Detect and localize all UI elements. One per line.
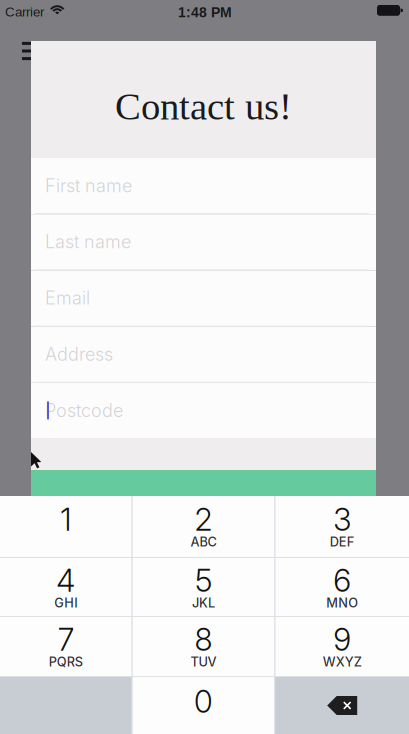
button[interactable]: 7 <box>0 617 132 676</box>
staticText: 2 <box>194 501 212 538</box>
button[interactable]: 9 <box>275 617 409 676</box>
staticText: 9 <box>333 621 351 658</box>
staticText: 1:48 PM <box>178 4 232 20</box>
staticText: 5 <box>195 562 212 599</box>
staticText: Postcode <box>45 399 123 421</box>
button[interactable] <box>31 470 376 514</box>
button[interactable]: 8 <box>133 617 274 676</box>
staticText: 1 <box>60 501 71 538</box>
staticText: Last name <box>45 231 131 253</box>
staticText: WXYZ <box>323 654 362 669</box>
staticText: Carrier <box>5 4 44 19</box>
staticText: Email <box>45 287 90 309</box>
staticText: Address <box>45 343 113 365</box>
staticText: 8 <box>194 621 212 658</box>
staticText: DEF <box>330 534 355 549</box>
staticText: 6 <box>333 562 351 599</box>
button[interactable]: Delete <box>275 677 409 734</box>
staticText: Contact us! <box>115 85 292 128</box>
staticText: First name <box>45 175 132 196</box>
button[interactable]: 3 <box>275 496 409 557</box>
staticText: MNO <box>326 595 358 610</box>
button[interactable]: 4 <box>0 558 132 616</box>
staticText: 4 <box>56 562 75 599</box>
staticText: GHI <box>54 595 77 610</box>
button[interactable]: 6 <box>275 558 409 616</box>
staticText: 3 <box>333 501 351 538</box>
staticText: PQRS <box>49 654 83 669</box>
button[interactable]: Postcode <box>31 383 376 438</box>
button[interactable]: First name <box>31 158 376 214</box>
button[interactable]: 5 <box>133 558 274 616</box>
button[interactable]: Menu <box>22 42 38 60</box>
staticText: 0 <box>194 683 213 720</box>
button[interactable]: 2 <box>133 496 274 557</box>
button[interactable]: 0 <box>133 677 274 734</box>
button[interactable]: Email <box>31 270 376 327</box>
button[interactable]: Last name <box>31 214 376 270</box>
staticText: 7 <box>58 621 74 658</box>
button[interactable]: Address <box>31 327 376 383</box>
staticText: JKL <box>192 595 215 610</box>
staticText: ABC <box>190 534 216 549</box>
staticText: TUV <box>190 654 216 669</box>
button[interactable]: 1 <box>0 496 132 557</box>
